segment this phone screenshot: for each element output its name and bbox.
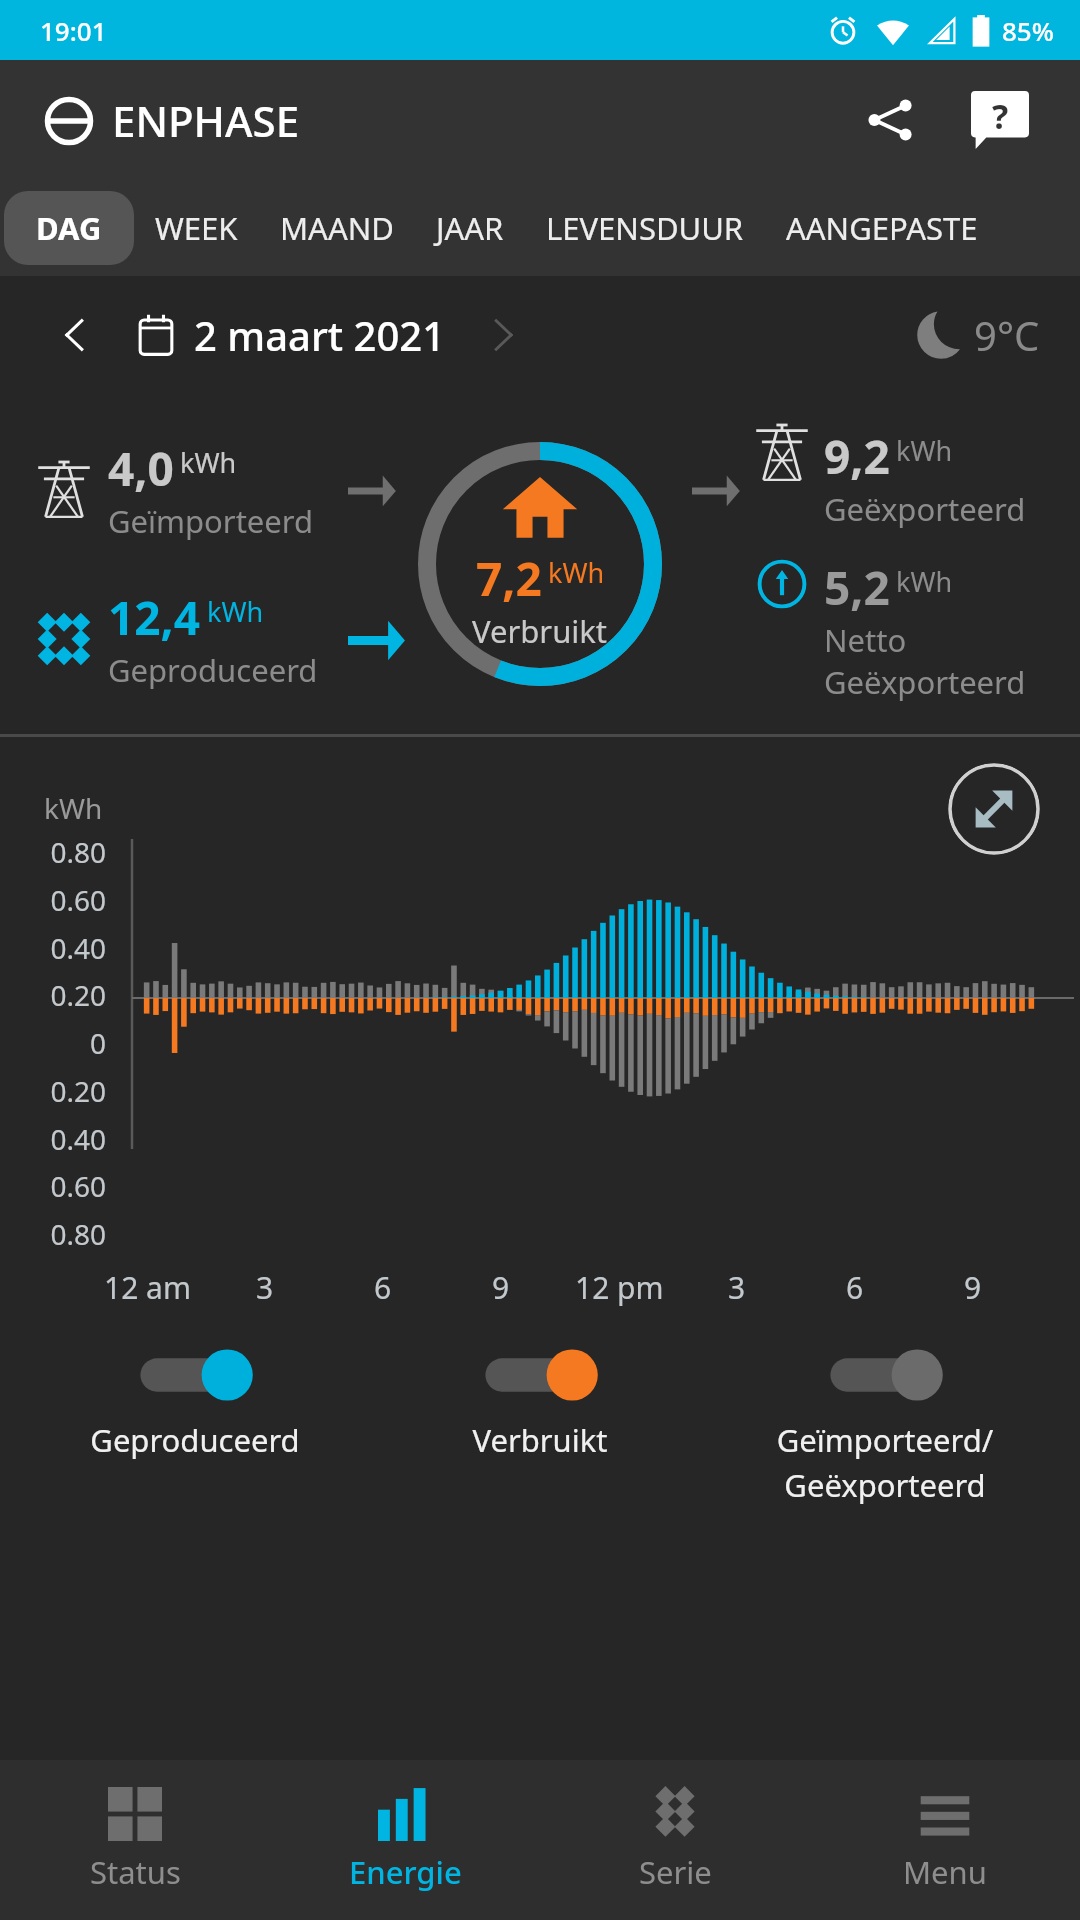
staticText: LEVENSDUUR bbox=[546, 207, 744, 249]
button[interactable]: Geproduceerd bbox=[45, 1343, 345, 1461]
staticText: WEEK bbox=[155, 207, 238, 249]
button[interactable]: Vorige dag bbox=[40, 300, 110, 370]
staticText: 12 pm bbox=[575, 1267, 664, 1308]
staticText: Status bbox=[90, 1851, 181, 1893]
staticText: 12 am bbox=[104, 1267, 191, 1308]
button[interactable]: Share bbox=[848, 78, 932, 162]
staticText: kWh bbox=[180, 444, 237, 481]
button[interactable]: JAAR bbox=[415, 191, 525, 265]
button[interactable]: Geïmporteerd/ Geëxporteerd bbox=[735, 1343, 1035, 1506]
button[interactable]: Energie bbox=[270, 1760, 540, 1920]
staticText: kWh bbox=[896, 563, 953, 600]
staticText: MAAND bbox=[280, 207, 394, 249]
staticText: AANGEPASTE bbox=[786, 207, 978, 249]
button[interactable]: Volledig scherm bbox=[948, 763, 1040, 855]
button[interactable]: Volgende dag bbox=[468, 300, 538, 370]
staticText: Geproduceerd bbox=[108, 649, 318, 691]
staticText: 3 bbox=[728, 1267, 746, 1308]
staticText: Geïmporteerd bbox=[108, 500, 314, 542]
staticText: Serie bbox=[639, 1851, 712, 1893]
staticText: Geproduceerd bbox=[45, 1419, 345, 1461]
staticText: ? bbox=[992, 93, 1009, 139]
button[interactable]: Status bbox=[0, 1760, 270, 1920]
staticText: 3 bbox=[256, 1267, 274, 1308]
staticText: ENPHASE bbox=[112, 92, 300, 149]
staticText: Netto Geëxporteerd bbox=[824, 619, 1026, 703]
staticText: Verbruikt bbox=[472, 610, 608, 652]
staticText: 9 bbox=[964, 1267, 982, 1308]
staticText: kWh bbox=[207, 593, 264, 630]
staticText: Geëxporteerd bbox=[824, 488, 1026, 530]
staticText: 0.20 bbox=[0, 1072, 106, 1110]
staticText: Energie bbox=[349, 1851, 462, 1893]
staticText: Menu bbox=[903, 1851, 987, 1893]
staticText: 4,0 bbox=[108, 437, 174, 500]
button[interactable]: Serie bbox=[540, 1760, 810, 1920]
staticText: 9°C bbox=[974, 308, 1040, 362]
button[interactable]: WEEK bbox=[134, 191, 259, 265]
staticText: 0 bbox=[0, 1024, 106, 1062]
staticText: 0.80 bbox=[0, 1215, 106, 1253]
staticText: DAG bbox=[36, 207, 102, 249]
button[interactable]: MAAND bbox=[259, 191, 415, 265]
staticText: 0.80 bbox=[0, 833, 106, 871]
staticText: JAAR bbox=[436, 207, 504, 249]
staticText: 0.40 bbox=[0, 929, 106, 967]
staticText: 7,2 bbox=[476, 547, 542, 610]
staticText: kWh bbox=[548, 554, 605, 591]
staticText: 9,2 bbox=[824, 425, 890, 488]
staticText: 0.60 bbox=[0, 1167, 106, 1205]
staticText: Verbruikt bbox=[390, 1419, 690, 1461]
button[interactable]: DAG bbox=[4, 191, 134, 265]
staticText: 19:01 bbox=[40, 13, 107, 48]
staticText: Geïmporteerd/ Geëxporteerd bbox=[735, 1419, 1035, 1506]
staticText: 2 maart 2021 bbox=[194, 308, 446, 362]
button[interactable]: AANGEPASTE bbox=[765, 191, 999, 265]
staticText: 9 bbox=[492, 1267, 510, 1308]
button[interactable]: Help bbox=[958, 78, 1042, 162]
button[interactable]: LEVENSDUUR bbox=[525, 191, 765, 265]
staticText: 6 bbox=[846, 1267, 864, 1308]
staticText: 6 bbox=[374, 1267, 392, 1308]
staticText: 12,4 bbox=[108, 586, 201, 649]
staticText: 0.20 bbox=[0, 976, 106, 1014]
staticText: kWh bbox=[896, 432, 953, 469]
staticText: 5,2 bbox=[824, 556, 890, 619]
staticText: 0.40 bbox=[0, 1120, 106, 1158]
staticText: 0.60 bbox=[0, 881, 106, 919]
button[interactable]: Verbruikt bbox=[390, 1343, 690, 1461]
button[interactable]: Menu bbox=[810, 1760, 1080, 1920]
staticText: 85% bbox=[1002, 13, 1054, 48]
staticText: kWh bbox=[44, 789, 103, 827]
